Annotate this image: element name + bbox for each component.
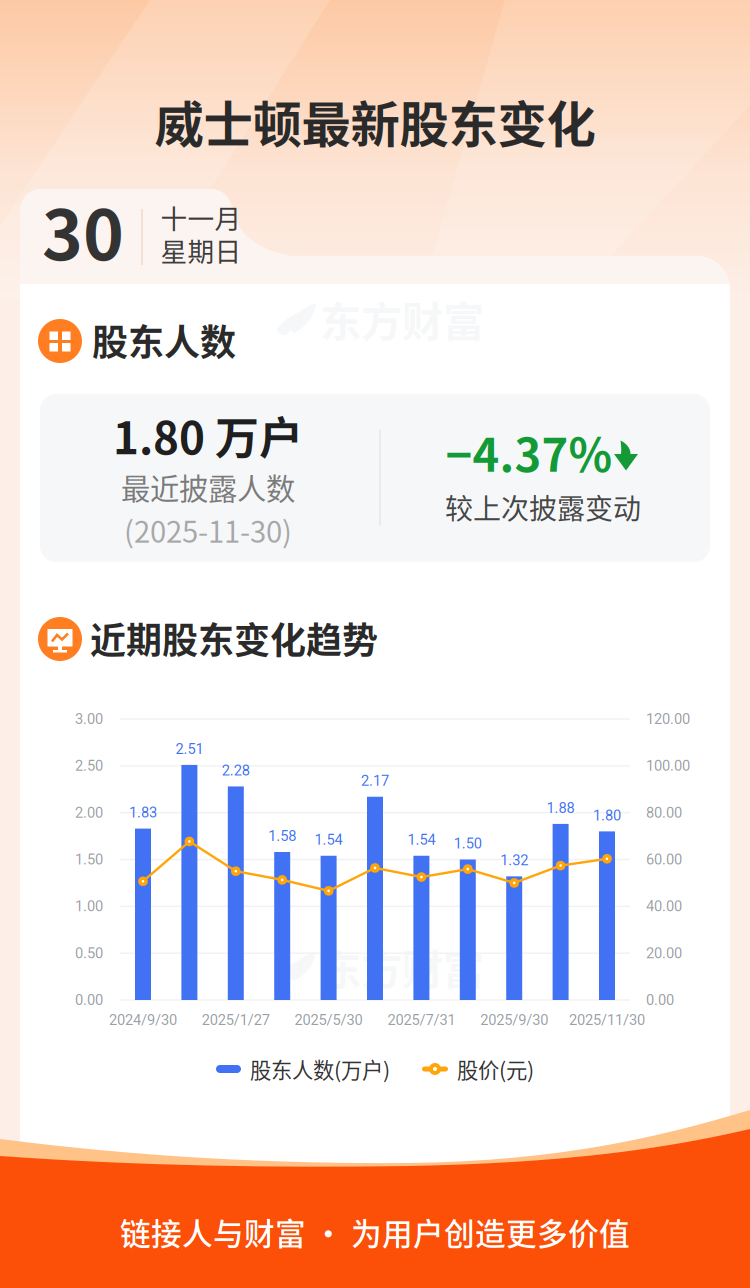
staticText: 0.00 [646, 991, 674, 1009]
staticText: 2.51 [175, 740, 203, 757]
staticText: 1.50 [75, 851, 103, 868]
staticText: 80.00 [646, 804, 682, 821]
staticText: 1.00 [75, 898, 103, 915]
staticText: 近期股东变化趋势 [90, 612, 378, 664]
staticText: 2.28 [222, 762, 250, 779]
staticText: 最近披露人数 [121, 466, 295, 508]
staticText: 60.00 [646, 851, 682, 868]
staticText: 星期日 [160, 231, 241, 269]
staticText: 20.00 [646, 945, 682, 962]
staticText: 十一月 [160, 198, 241, 236]
staticText: 2025/11/30 [569, 1011, 645, 1029]
staticText: 股东人数 [92, 314, 236, 366]
staticText: 100.00 [646, 757, 690, 774]
staticText: 2.17 [361, 772, 389, 789]
staticText: 威士顿最新股东变化 [154, 85, 595, 157]
staticText: 2025/5/30 [295, 1011, 363, 1029]
staticText: 较上次披露变动 [445, 487, 641, 527]
staticText: (2025-11-30) [124, 509, 292, 551]
staticText: 1.50 [454, 835, 482, 852]
staticText: 1.88 [547, 799, 575, 816]
staticText: 40.00 [646, 898, 682, 915]
staticText: 2025/9/30 [480, 1011, 548, 1029]
staticText: 30 [42, 180, 124, 280]
staticText: 1.54 [407, 831, 435, 848]
staticText: 股东人数(万户) [250, 1054, 390, 1084]
staticText: 1.80 [593, 807, 621, 824]
staticText: 1.54 [315, 831, 343, 848]
staticText: 120.00 [646, 710, 690, 728]
staticText: 股价(元) [457, 1054, 534, 1084]
staticText: 1.32 [500, 852, 528, 869]
staticText: 东方财富 [320, 289, 484, 349]
staticText: 2024/9/30 [109, 1011, 177, 1029]
staticText: 链接人与财富 · 为用户创造更多价值 [120, 1210, 630, 1254]
staticText: 东方财富 [320, 937, 484, 997]
staticText: 1.58 [268, 827, 296, 845]
staticText: 2.00 [75, 804, 103, 821]
staticText: 1.83 [129, 804, 157, 821]
staticText: 0.00 [75, 991, 103, 1009]
staticText: 0.50 [75, 945, 103, 962]
staticText: 3.00 [75, 710, 103, 728]
staticText: −4.37% [445, 419, 612, 485]
staticText: 1.80 万户 [113, 403, 303, 467]
staticText: 2.50 [75, 757, 103, 774]
staticText: 2025/1/27 [202, 1011, 270, 1029]
staticText: 2025/7/31 [387, 1011, 455, 1029]
